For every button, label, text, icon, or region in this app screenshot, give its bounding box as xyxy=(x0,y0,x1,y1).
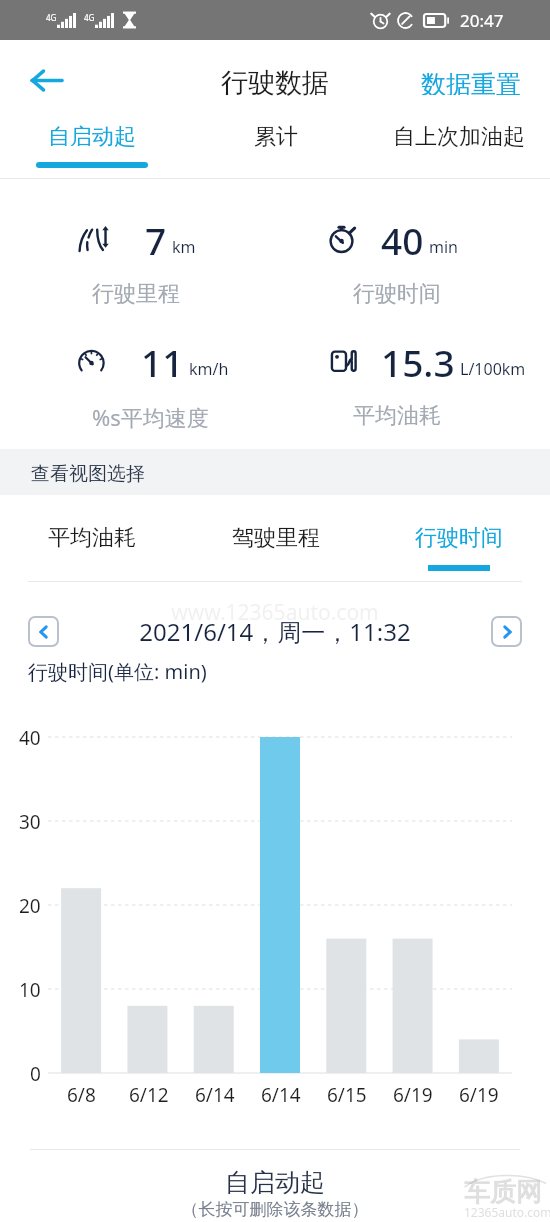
staticText: 7 xyxy=(145,215,167,265)
button[interactable]: Previous xyxy=(28,616,59,647)
staticText: 40 xyxy=(381,215,424,265)
staticText: 行驶里程 xyxy=(92,280,180,308)
staticText: 车质网 xyxy=(464,1176,542,1209)
staticText: 0 xyxy=(30,1061,41,1087)
button[interactable]: 累计 xyxy=(184,102,367,178)
staticText: 平均油耗 xyxy=(353,402,441,430)
button[interactable]: Back xyxy=(18,52,74,108)
staticText: www.12365auto.com xyxy=(0,598,550,627)
button[interactable]: 自启动起 xyxy=(0,102,184,178)
staticText: 自上次加油起 xyxy=(393,123,525,151)
staticText: 2021/6/14，周一，11:32 xyxy=(59,615,491,648)
staticText: 自启动起 xyxy=(48,123,136,151)
staticText: 平均油耗 xyxy=(48,524,136,552)
staticText: 行驶时间(单位: min) xyxy=(28,658,207,685)
staticText: 30 xyxy=(19,809,41,835)
staticText: 6/14 xyxy=(195,1082,235,1108)
staticText: 行驶数据 xyxy=(0,66,550,100)
staticText: 查看视图选择 xyxy=(31,462,145,486)
button[interactable]: 行驶时间 xyxy=(367,495,550,581)
staticText: 行驶时间 xyxy=(353,280,441,308)
button[interactable]: 自上次加油起 xyxy=(367,102,550,178)
staticText: （长按可删除该条数据） xyxy=(0,1199,550,1220)
staticText: 累计 xyxy=(254,123,298,151)
button[interactable]: 数据重置 xyxy=(413,59,529,105)
staticText: 15.3 xyxy=(381,337,455,387)
staticText: 6/19 xyxy=(459,1082,499,1108)
staticText: 自启动起 xyxy=(0,1167,550,1198)
staticText: 6/15 xyxy=(327,1082,367,1108)
staticText: 行驶时间 xyxy=(415,524,503,552)
staticText: 6/8 xyxy=(67,1082,96,1108)
staticText: L/100km xyxy=(460,358,526,380)
staticText: 20:47 xyxy=(460,9,504,32)
staticText: 驾驶里程 xyxy=(232,524,320,552)
staticText: 40 xyxy=(19,725,41,751)
staticText: %s平均速度 xyxy=(92,402,209,432)
button[interactable]: 自启动起 xyxy=(0,1156,550,1222)
button[interactable]: 平均油耗 xyxy=(0,495,184,581)
button[interactable]: 驾驶里程 xyxy=(184,495,367,581)
staticText: 10 xyxy=(19,977,41,1003)
staticText: 4G xyxy=(46,12,57,23)
staticText: 4G xyxy=(84,12,95,23)
staticText: min xyxy=(429,236,458,258)
staticText: 6/12 xyxy=(129,1082,169,1108)
button[interactable]: Next xyxy=(491,616,522,647)
staticText: km/h xyxy=(189,358,229,380)
staticText: 12365auto.com xyxy=(464,1204,550,1220)
staticText: 数据重置 xyxy=(421,69,521,95)
staticText: 11 xyxy=(141,337,184,387)
staticText: km xyxy=(172,236,196,258)
staticText: 20 xyxy=(19,893,41,919)
staticText: 6/14 xyxy=(261,1082,301,1108)
staticText: 6/19 xyxy=(393,1082,433,1108)
